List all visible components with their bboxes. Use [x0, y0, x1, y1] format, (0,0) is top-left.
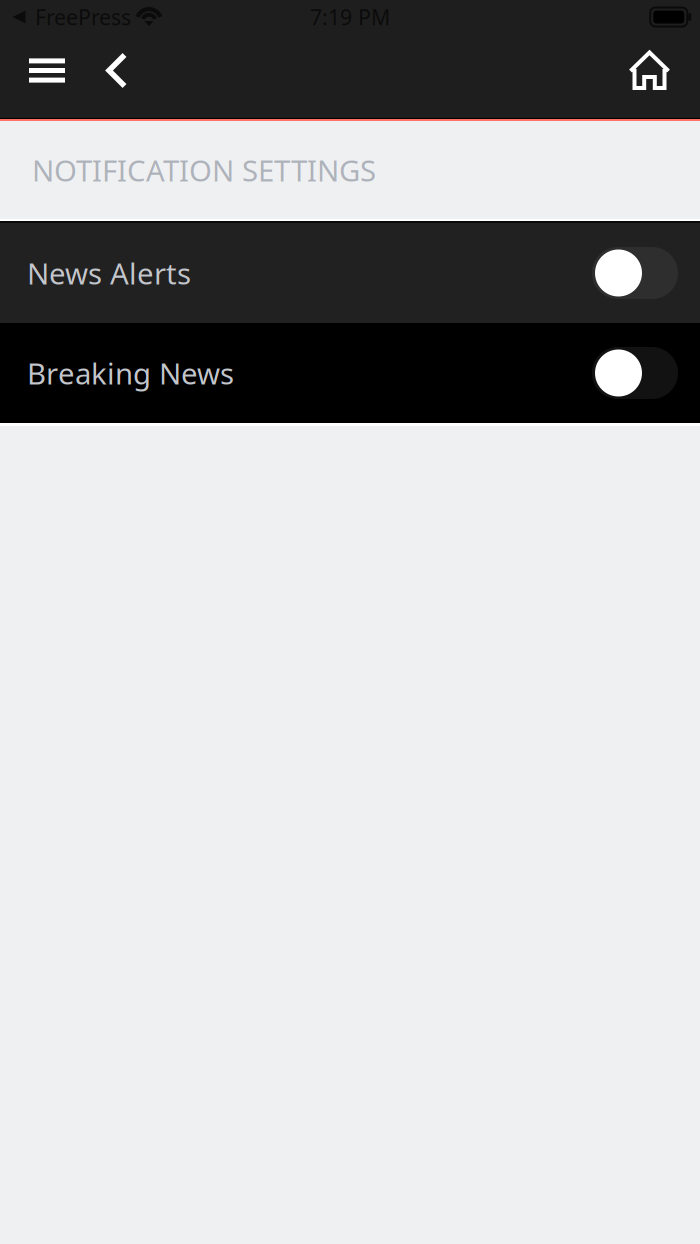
button[interactable]: Home: [629, 34, 700, 117]
staticText: Breaking News: [27, 353, 234, 392]
button[interactable]: Breaking News: [0, 323, 700, 423]
button[interactable]: Menu: [0, 34, 77, 117]
staticText: 7:19 PM: [310, 3, 390, 31]
staticText: NOTIFICATION SETTINGS: [32, 150, 376, 189]
button[interactable]: Back: [77, 34, 139, 117]
staticText: News Alerts: [27, 253, 191, 292]
staticText: FreePress: [35, 3, 131, 31]
button[interactable]: News Alerts: [0, 223, 700, 323]
